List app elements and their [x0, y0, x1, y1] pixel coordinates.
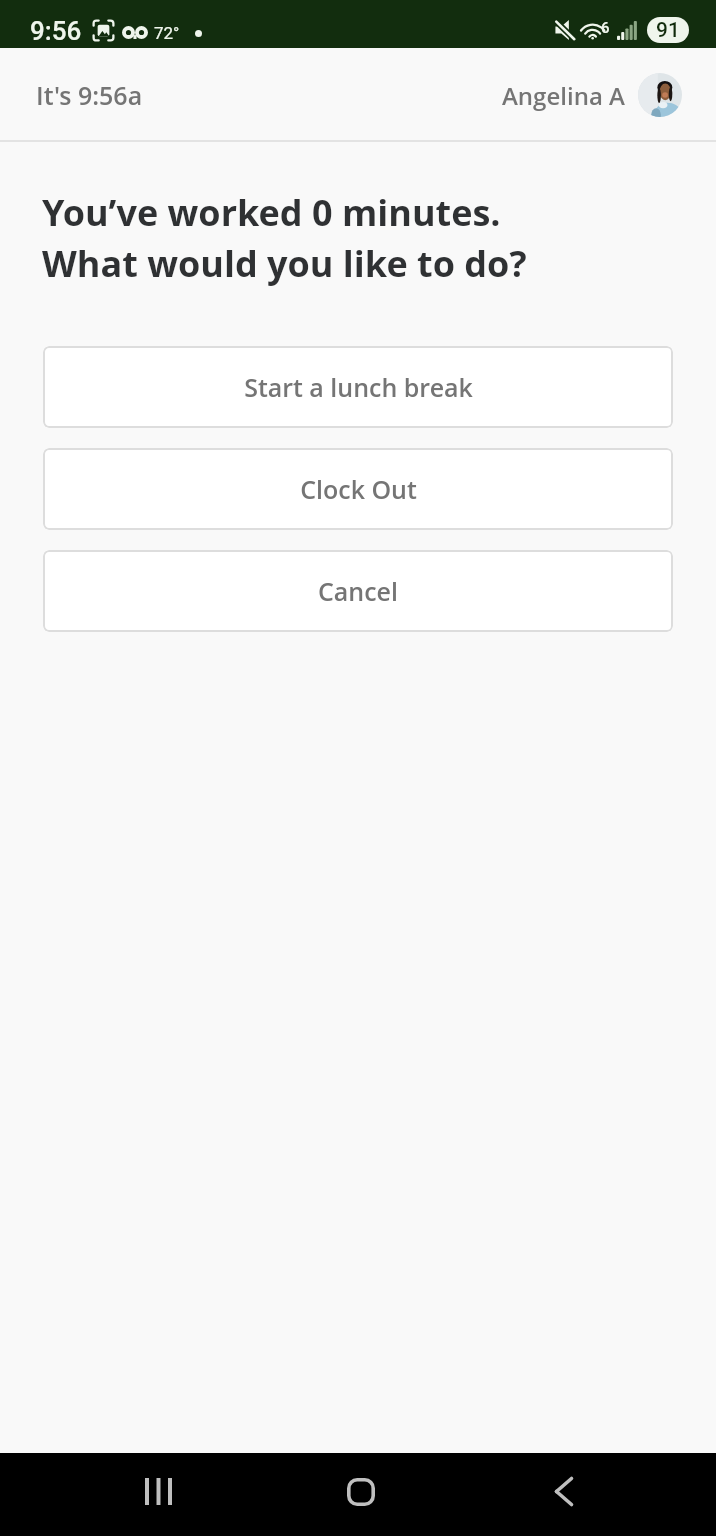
button[interactable]: Home: [313, 1450, 409, 1533]
button[interactable]: Clock Out: [43, 448, 673, 530]
staticText: Start a lunch break: [244, 370, 473, 404]
button[interactable]: Back: [516, 1450, 612, 1533]
staticText: 6: [601, 19, 610, 37]
button[interactable]: Recent apps: [110, 1450, 206, 1533]
staticText: 72°: [154, 23, 180, 43]
staticText: It's 9:56a: [36, 78, 143, 112]
staticText: Clock Out: [300, 472, 417, 506]
button[interactable]: Angelina A: [502, 73, 682, 117]
staticText: Angelina A: [502, 79, 625, 112]
staticText: 91: [656, 18, 680, 43]
staticText: You’ve worked 0 minutes. What would you …: [42, 188, 527, 288]
staticText: Cancel: [318, 574, 398, 608]
button[interactable]: Cancel: [43, 550, 673, 632]
button[interactable]: Profile photo: [638, 73, 682, 117]
staticText: 9:56: [30, 16, 82, 46]
button[interactable]: Start a lunch break: [43, 346, 673, 428]
